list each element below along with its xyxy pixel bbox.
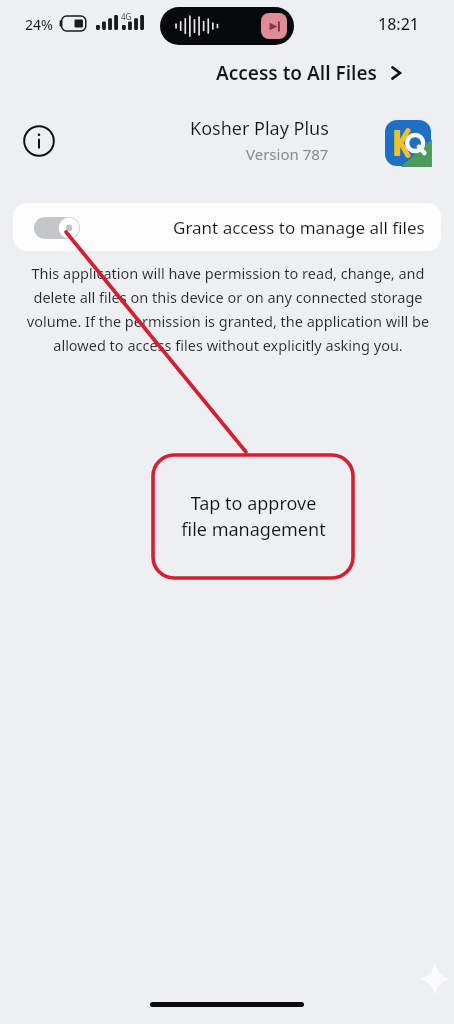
staticText: Tap to approve file management [181,491,326,542]
button[interactable]: Access to All Files [216,60,405,86]
staticText: This application will have permission to… [24,263,432,355]
button[interactable]: Grant access to manage all files [13,203,441,251]
button[interactable]: App info [22,124,56,158]
staticText: 24% [25,15,53,34]
staticText: Version 787 [246,144,329,164]
button[interactable]: Tap to approve file management [153,455,353,578]
staticText: Access to All Files [216,60,377,86]
button[interactable]: Media control [261,13,287,39]
staticText: Grant access to manage all files [173,216,425,239]
staticText: 4G [121,11,132,22]
staticText: 18:21 [378,13,419,35]
staticText: Kosher Play Plus [190,116,329,141]
